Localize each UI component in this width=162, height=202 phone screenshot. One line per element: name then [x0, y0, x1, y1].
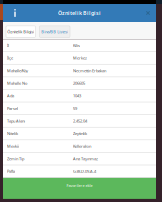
button[interactable]: Bina/BB Listesi: [39, 26, 70, 37]
staticText: G38-D-09-A-4: [73, 169, 96, 174]
staticText: Kelleralsın: [73, 143, 91, 149]
staticText: Mahalle No: [7, 80, 27, 86]
staticText: Mevkii: [7, 143, 19, 149]
staticText: İl: [7, 43, 9, 48]
staticText: Bina/BB Listesi: [41, 29, 68, 34]
staticText: 59: [73, 106, 77, 111]
staticText: Zemin Tip: [7, 156, 24, 161]
button[interactable]: Close: [140, 4, 156, 22]
staticText: 2.452,04: [73, 118, 87, 124]
staticText: Öznitelik Bilgisi: [58, 9, 101, 17]
staticText: Necmettin Erbakan: [73, 68, 106, 73]
staticText: Tapu Alanı: [7, 118, 25, 124]
button[interactable]: Info: [7, 4, 23, 22]
staticText: 1043: [73, 93, 81, 98]
staticText: Mahalle/Köy: [7, 68, 28, 73]
staticText: İlçe: [7, 55, 13, 61]
button[interactable]: Favorilere ekle: [3, 178, 156, 199]
staticText: Zeytinlik: [73, 131, 87, 136]
staticText: Ada: [7, 93, 14, 98]
staticText: Parsel: [7, 106, 18, 111]
staticText: Favorilere ekle: [66, 183, 92, 188]
staticText: 206605: [73, 80, 85, 86]
button[interactable]: Öznitelik Bilgisi: [6, 26, 35, 37]
staticText: Kilis: [73, 43, 80, 48]
staticText: Ana Taşınmaz: [73, 156, 98, 161]
staticText: Merkez: [73, 55, 87, 61]
staticText: Pafta: [7, 169, 15, 174]
staticText: Nitelik: [7, 131, 18, 136]
staticText: Öznitelik Bilgisi: [7, 29, 34, 34]
